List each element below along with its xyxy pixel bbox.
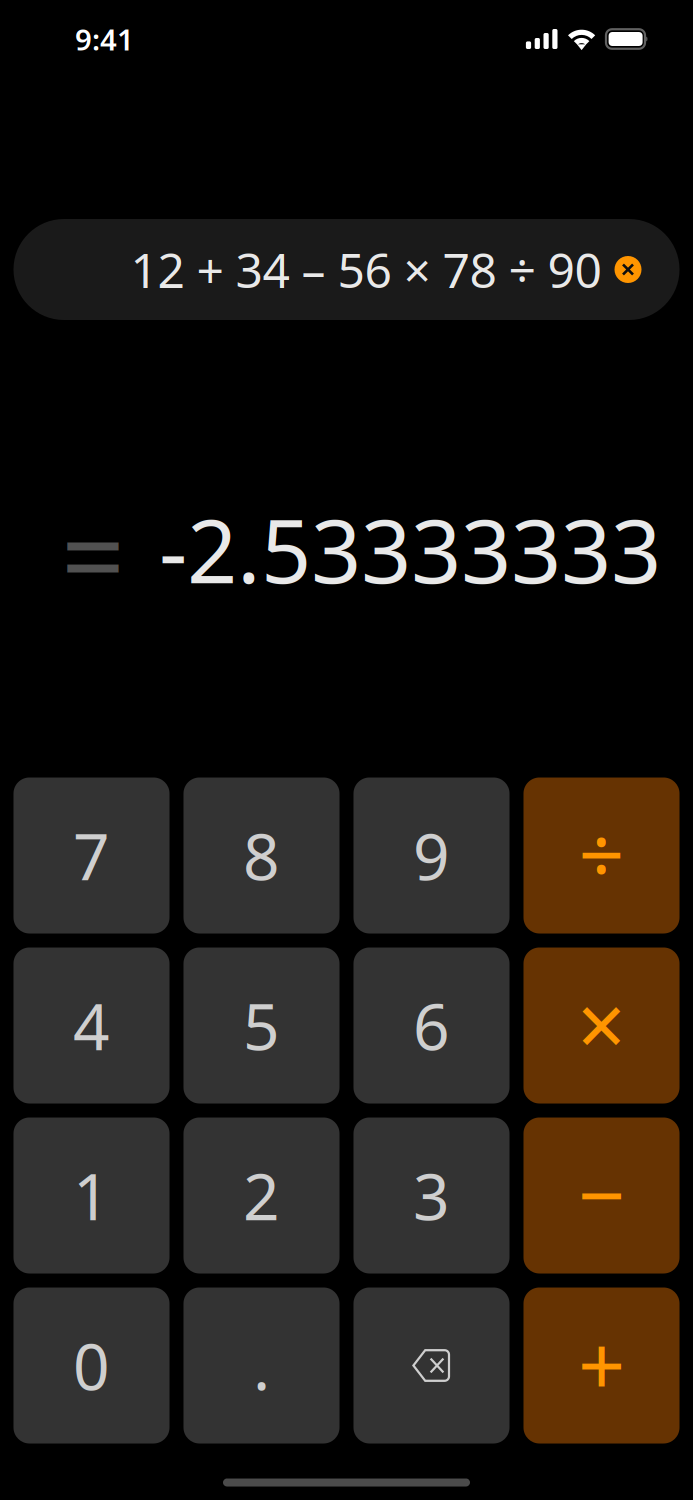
button[interactable]: 0 [13,1287,169,1443]
button[interactable]: Subtract [523,1117,679,1273]
button[interactable]: Add [523,1287,679,1443]
staticText: × [577,967,626,1080]
staticText: 9:41 [75,19,134,58]
staticText: 6 [413,983,450,1068]
staticText: − [578,1139,625,1248]
button[interactable]: 7 [13,777,169,933]
staticText: 8 [243,813,280,898]
button[interactable]: Clear [614,256,641,283]
staticText: ÷ [578,800,624,907]
staticText: + [578,1309,625,1418]
button[interactable]: 8 [183,777,339,933]
staticText: 7 [73,813,110,898]
button[interactable]: Expression 12 + 34 – 56 × 78 ÷ 90 [13,219,679,320]
button[interactable]: 2 [183,1117,339,1273]
button[interactable]: 1 [13,1117,169,1273]
staticText: -2.53333333 [159,491,661,607]
staticText: . [253,1323,270,1408]
staticText: 5 [243,983,280,1068]
button[interactable]: Delete [353,1287,509,1443]
button[interactable]: Multiply [523,947,679,1103]
staticText: 1 [73,1153,110,1238]
button[interactable]: 6 [353,947,509,1103]
button[interactable]: 3 [353,1117,509,1273]
staticText: 3 [413,1153,450,1238]
button[interactable]: 9 [353,777,509,933]
staticText: 2 [243,1153,280,1238]
staticText: 4 [73,983,110,1068]
staticText: 0 [73,1323,110,1408]
button[interactable]: . [183,1287,339,1443]
staticText: = [61,479,125,627]
button[interactable]: Divide [523,777,679,933]
staticText: 9 [413,813,450,898]
button[interactable]: 4 [13,947,169,1103]
staticText: 12 + 34 – 56 × 78 ÷ 90 [130,238,601,301]
button[interactable]: 5 [183,947,339,1103]
